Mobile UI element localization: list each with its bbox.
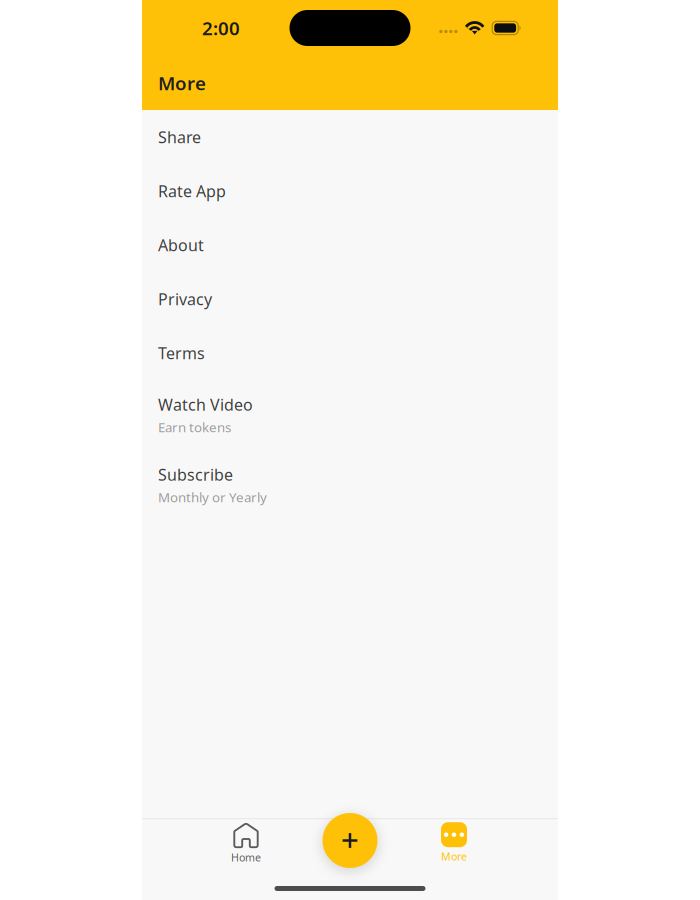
staticText: Share [158,126,201,148]
button[interactable]: More [414,822,494,864]
staticText: About [158,234,204,256]
staticText: Rate App [158,180,226,202]
staticText: Subscribe [158,464,233,485]
staticText: 2:00 [202,16,240,40]
button[interactable]: Home [206,822,286,864]
button[interactable]: Add [322,813,377,868]
staticText: Watch Video [158,394,253,415]
button[interactable]: Terms [142,326,558,380]
staticText: Earn tokens [158,418,231,436]
button[interactable]: Rate App [142,164,558,218]
button[interactable]: Subscribe [142,450,558,520]
staticText: Privacy [158,288,212,310]
button[interactable]: Watch Video [142,380,558,450]
staticText: More [158,71,206,95]
button[interactable]: About [142,218,558,272]
staticText: Home [231,850,261,864]
staticText: Monthly or Yearly [158,488,267,506]
staticText: More [441,849,467,863]
staticText: Terms [158,342,205,364]
button[interactable]: Share [142,110,558,164]
button[interactable]: Privacy [142,272,558,326]
